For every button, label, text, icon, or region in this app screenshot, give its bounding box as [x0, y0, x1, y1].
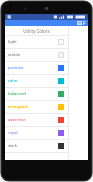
- staticText: F: [83, 20, 86, 26]
- button[interactable]: calm: [5, 75, 68, 87]
- button[interactable]: Menu: [75, 20, 83, 26]
- staticText: assertive: [8, 117, 26, 123]
- staticText: dark: [8, 143, 17, 149]
- staticText: light: [8, 39, 17, 45]
- button[interactable]: assertive: [5, 114, 68, 126]
- staticText: royal: [8, 130, 18, 136]
- button[interactable]: F: [83, 20, 86, 26]
- staticText: balanced: [8, 91, 26, 97]
- staticText: visible: [8, 52, 21, 58]
- button[interactable]: visible: [5, 49, 68, 61]
- staticText: energized: [8, 104, 28, 110]
- staticText: calm: [8, 78, 18, 84]
- staticText: Utility Colors: [23, 28, 50, 34]
- button[interactable]: energized: [5, 101, 68, 113]
- button[interactable]: Utility Colors: [5, 26, 68, 35]
- staticText: positive: [8, 65, 24, 71]
- button[interactable]: dark: [5, 140, 68, 152]
- button[interactable]: light: [5, 36, 68, 48]
- button[interactable]: balanced: [5, 88, 68, 100]
- button[interactable]: positive: [5, 62, 68, 74]
- button[interactable]: royal: [5, 127, 68, 139]
